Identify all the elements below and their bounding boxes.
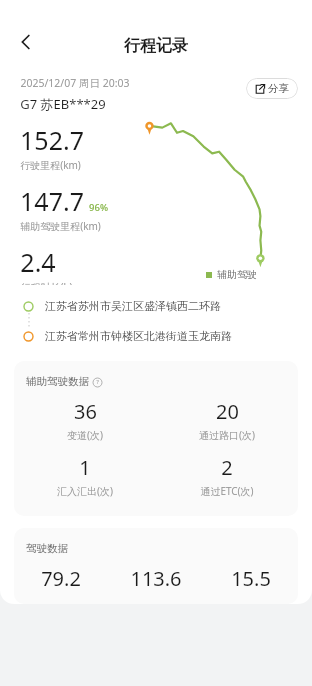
staticText: 行程记录: [124, 36, 188, 56]
staticText: 96%: [89, 201, 108, 214]
staticText: 行驶里程(km): [20, 158, 81, 172]
staticText: 1: [79, 454, 91, 481]
staticText: 20: [216, 398, 239, 425]
staticText: 152.7: [20, 123, 84, 157]
staticText: 113.6: [130, 565, 182, 588]
button[interactable]: 分享: [246, 78, 298, 99]
staticText: 汇入汇出(次): [57, 484, 113, 498]
button[interactable]: Back: [8, 24, 44, 60]
staticText: 通过路口(次): [199, 428, 255, 442]
staticText: 79.2: [41, 565, 81, 588]
staticText: 变道(次): [67, 428, 103, 442]
staticText: 147.7: [20, 184, 84, 218]
staticText: 辅助驾驶里程(km): [20, 219, 101, 233]
staticText: 驾驶数据: [26, 542, 68, 555]
staticText: 辅助驾驶数据: [26, 375, 89, 388]
staticText: 2.4: [20, 245, 56, 279]
staticText: 2025/12/07 周日 20:03: [20, 76, 130, 90]
staticText: G7 苏EB***29: [20, 95, 106, 113]
staticText: 2: [221, 454, 233, 481]
staticText: 36: [74, 398, 97, 425]
staticText: 江苏省苏州市吴江区盛泽镇西二环路: [45, 299, 221, 313]
staticText: 分享: [268, 82, 289, 95]
staticText: 辅助驾驶: [217, 268, 257, 281]
button[interactable]: Info: [92, 377, 102, 387]
staticText: 行程时长(h): [20, 280, 73, 285]
staticText: 通过ETC(次): [200, 484, 254, 498]
staticText: 江苏省常州市钟楼区北港街道玉龙南路: [45, 329, 232, 343]
staticText: ?: [96, 378, 99, 386]
staticText: 15.5: [231, 565, 271, 588]
